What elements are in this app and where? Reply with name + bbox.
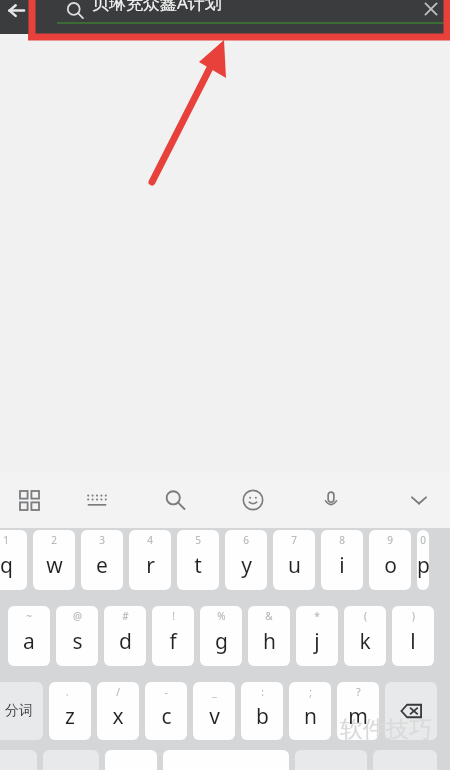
staticText: i — [339, 551, 345, 580]
button[interactable]: ! — [152, 606, 194, 666]
staticText: 5 — [195, 533, 201, 547]
button[interactable]: # — [104, 606, 146, 666]
staticText: 6 — [243, 533, 249, 547]
staticText: 、 — [65, 685, 75, 698]
staticText: t — [194, 551, 202, 580]
staticText: e — [96, 551, 108, 580]
button[interactable]: ) — [392, 606, 434, 666]
staticText: ( — [364, 609, 367, 623]
staticText: / — [116, 685, 120, 699]
staticText: ) — [412, 609, 415, 623]
button[interactable]: 0 — [417, 530, 429, 590]
staticText: 8 — [339, 533, 345, 547]
staticText: x — [112, 702, 124, 731]
staticText: v — [209, 702, 220, 731]
staticText: 软件技巧 — [340, 715, 432, 744]
staticText: ~ — [26, 609, 32, 623]
staticText: # — [122, 609, 129, 623]
staticText: 0 — [420, 533, 426, 547]
button[interactable]: Voice input — [292, 472, 370, 528]
staticText: ? — [356, 685, 361, 699]
button[interactable]: ~ — [8, 606, 50, 666]
button[interactable]: 7 — [273, 530, 315, 590]
button[interactable]: ( — [344, 606, 386, 666]
button[interactable]: 、 — [49, 682, 91, 740]
staticText: d — [119, 627, 132, 656]
staticText: & — [265, 609, 273, 623]
staticText: ! — [172, 609, 175, 623]
staticText: @ — [73, 609, 82, 623]
staticText: k — [359, 627, 371, 656]
staticText: j — [314, 627, 320, 656]
staticText: m — [348, 702, 368, 731]
staticText: h — [263, 627, 276, 656]
button[interactable]: 6 — [225, 530, 267, 590]
staticText: y — [241, 551, 252, 580]
button[interactable]: & — [248, 606, 290, 666]
button[interactable]: Backspace — [385, 682, 437, 740]
staticText: : — [261, 685, 264, 699]
staticText: 分词 — [5, 702, 33, 720]
staticText: f — [169, 627, 177, 656]
button[interactable]: _ — [193, 682, 235, 740]
button[interactable]: - — [145, 682, 187, 740]
button[interactable]: 2 — [33, 530, 75, 590]
button[interactable]: Keyboard layout — [58, 472, 136, 528]
button[interactable]: @ — [56, 606, 98, 666]
staticText: _ — [212, 685, 217, 699]
staticText: 7 — [291, 533, 297, 547]
button[interactable]: Search — [136, 472, 214, 528]
staticText: l — [410, 627, 416, 656]
staticText: 2 — [51, 533, 57, 547]
staticText: b — [256, 702, 269, 731]
button[interactable]: 4 — [129, 530, 171, 590]
button[interactable]: Hide keyboard — [388, 472, 450, 528]
staticText: - — [164, 685, 168, 699]
button[interactable]: 3 — [81, 530, 123, 590]
button[interactable]: ? — [337, 682, 379, 740]
button[interactable]: : — [241, 682, 283, 740]
button[interactable]: 分词 — [0, 682, 43, 740]
staticText: s — [72, 627, 83, 656]
staticText: r — [146, 551, 155, 580]
button[interactable]: Emoji — [214, 472, 292, 528]
button[interactable]: 8 — [321, 530, 363, 590]
staticText: a — [23, 627, 35, 656]
button[interactable]: 9 — [369, 530, 411, 590]
staticText: o — [384, 551, 397, 580]
staticText: w — [46, 551, 63, 580]
staticText: g — [215, 627, 228, 656]
staticText: p — [417, 551, 429, 580]
button[interactable]: Clear — [416, 0, 446, 24]
staticText: q — [0, 551, 13, 580]
staticText: % — [217, 609, 226, 623]
staticText: 4 — [147, 533, 153, 547]
button[interactable]: ; — [289, 682, 331, 740]
staticText: 9 — [387, 533, 393, 547]
staticText: c — [161, 702, 172, 731]
button[interactable]: Back — [2, 0, 32, 30]
button[interactable]: * — [296, 606, 338, 666]
button[interactable]: / — [97, 682, 139, 740]
button[interactable]: % — [200, 606, 242, 666]
staticText: z — [65, 702, 75, 731]
staticText: 贝琳茺众鑫A计划 — [92, 0, 222, 14]
staticText: u — [288, 551, 301, 580]
staticText: 1 — [3, 533, 9, 547]
button[interactable]: Key — [163, 750, 289, 770]
staticText: 3 — [99, 533, 105, 547]
button[interactable]: Key — [105, 750, 157, 770]
staticText: n — [304, 702, 317, 731]
staticText: ; — [309, 685, 312, 699]
button[interactable]: 5 — [177, 530, 219, 590]
button[interactable]: 1 — [0, 530, 27, 590]
button[interactable]: Apps — [0, 472, 58, 528]
staticText: * — [314, 609, 320, 623]
